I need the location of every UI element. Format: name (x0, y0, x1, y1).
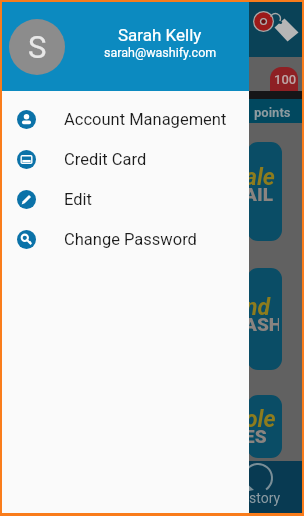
staticText: ES (247, 425, 267, 447)
staticText: S (28, 29, 47, 65)
button[interactable]: Change Password (2, 219, 249, 259)
staticText: Credit Card (64, 150, 147, 169)
staticText: Account Management (64, 110, 227, 129)
staticText: ale (247, 164, 275, 191)
staticText: Change Password (64, 230, 197, 249)
staticText: points (254, 105, 291, 120)
button[interactable]: Account Management (2, 99, 249, 139)
button[interactable]: Credit Card (2, 139, 249, 179)
staticText: ASH (247, 313, 279, 335)
staticText: ole (247, 406, 276, 433)
button[interactable]: Edit (2, 179, 249, 219)
staticText: Edit (64, 190, 92, 209)
staticText: 100 (274, 72, 297, 87)
staticText: Sarah Kelly (118, 25, 202, 45)
staticText: AIL (247, 183, 273, 205)
staticText: nd (247, 294, 271, 321)
staticText: story (249, 490, 281, 506)
staticText: sarah@washify.com (104, 45, 217, 60)
